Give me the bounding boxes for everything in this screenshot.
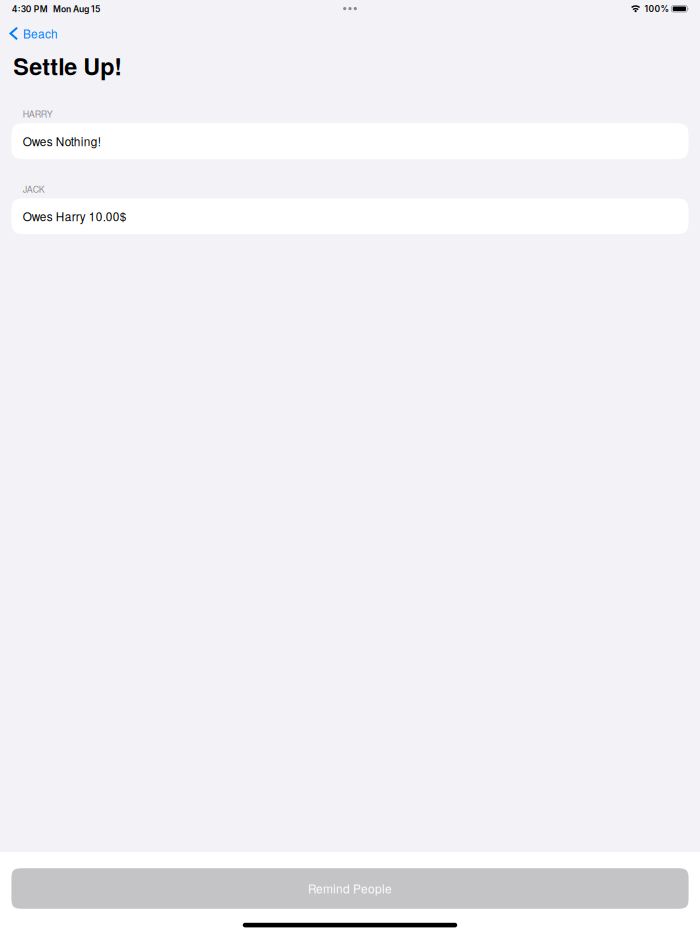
button[interactable]: Owes Harry 10.00$ [11, 198, 689, 234]
button[interactable]: Remind People [11, 868, 689, 909]
staticText: Settle Up! [13, 49, 122, 82]
staticText: 100% [644, 4, 669, 14]
staticText: Owes Harry 10.00$ [23, 208, 127, 225]
button[interactable]: Owes Nothing! [11, 123, 689, 159]
staticText: Remind People [308, 880, 392, 897]
button[interactable]: Beach [0, 24, 65, 42]
staticText: JACK [23, 182, 45, 195]
staticText: Beach [23, 25, 58, 42]
staticText: Owes Nothing! [23, 133, 101, 150]
staticText: 4:30 PM [12, 4, 48, 14]
staticText: HARRY [23, 107, 53, 120]
staticText: Mon Aug 15 [53, 4, 100, 14]
